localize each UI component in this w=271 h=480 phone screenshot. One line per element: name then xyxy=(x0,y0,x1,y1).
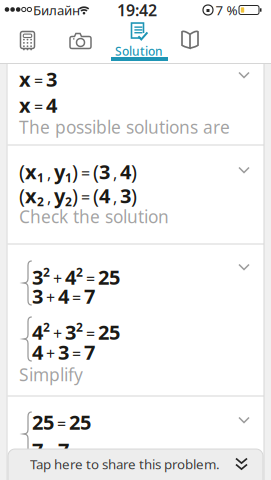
staticText: 7 = 7 xyxy=(32,437,69,463)
staticText: (x1 , y1) = (3 , 4) xyxy=(19,158,137,186)
staticText: Tap here to share this problem. xyxy=(30,455,220,473)
staticText: Билайн xyxy=(33,1,80,19)
button[interactable]: Camera xyxy=(60,24,100,58)
button[interactable]: Expand step 3 xyxy=(231,256,257,278)
staticText: (x2 , y2) = (4 , 3) xyxy=(19,182,137,210)
staticText: 7 % xyxy=(215,1,237,19)
staticText: Simplify xyxy=(19,363,83,386)
button[interactable]: Notebook xyxy=(170,23,210,57)
staticText: 32 + 42 = 25 xyxy=(32,264,120,290)
button[interactable]: Solution xyxy=(109,23,169,59)
button[interactable]: Expand step 4 xyxy=(231,409,257,431)
staticText: x = 3 xyxy=(19,66,57,92)
button[interactable]: Calculator xyxy=(7,23,47,57)
staticText: 3 + 4 = 7 xyxy=(32,283,95,309)
staticText: The possible solutions are xyxy=(19,115,230,138)
button[interactable]: Tap here to share this problem. xyxy=(8,449,263,480)
button[interactable]: Expand step 2 xyxy=(231,159,257,181)
staticText: x = 4 xyxy=(19,92,57,118)
staticText: 25 = 25 xyxy=(32,409,91,435)
staticText: Check the solution xyxy=(19,205,169,228)
staticText: Solution xyxy=(115,43,163,59)
staticText: 4 + 3 = 7 xyxy=(32,339,95,365)
staticText: 42 + 32 = 25 xyxy=(32,319,120,345)
staticText: 19:42 xyxy=(117,0,157,21)
button[interactable]: Expand step 1 xyxy=(231,64,257,86)
